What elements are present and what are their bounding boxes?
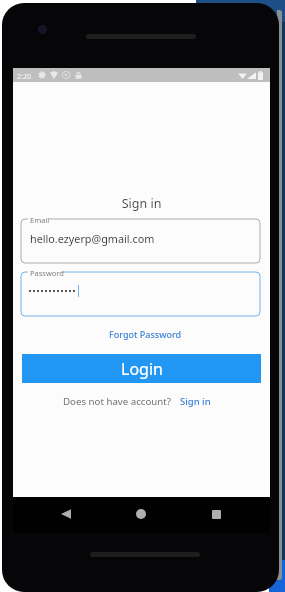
staticText: Login (121, 358, 163, 380)
staticText: Does not have account? (63, 395, 172, 408)
button[interactable]: Login (22, 354, 261, 383)
staticText: Sign in (13, 195, 270, 212)
button[interactable]: Recent apps (205, 503, 227, 525)
staticText: Sign in (180, 395, 211, 408)
button[interactable]: Back (55, 503, 77, 525)
staticText: Forgot Password (109, 328, 182, 340)
button[interactable]: Home (130, 503, 152, 525)
staticText: 2:20 (17, 72, 31, 82)
button[interactable]: Sign in (180, 395, 211, 408)
button[interactable]: Forgot Password (103, 326, 188, 342)
staticText: Password (30, 268, 64, 278)
staticText: Email (30, 215, 50, 225)
staticText: hello.ezyerp@gmail.com (30, 231, 155, 246)
